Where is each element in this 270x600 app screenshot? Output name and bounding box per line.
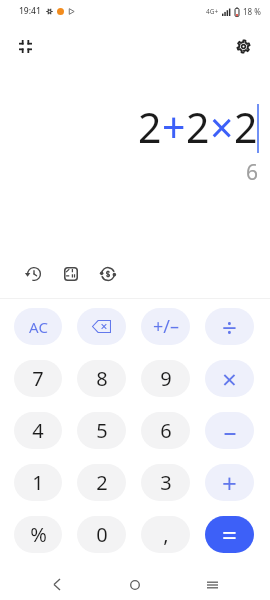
staticText: – [223, 413, 237, 448]
staticText: 5 [96, 417, 108, 444]
staticText: 18 % [243, 6, 261, 17]
staticText: × [210, 99, 234, 155]
staticText: 2 [138, 99, 162, 155]
button[interactable]: 1 [14, 464, 62, 501]
staticText: 3 [160, 469, 172, 496]
button[interactable]: +/– [141, 308, 190, 345]
button[interactable]: – [205, 412, 254, 449]
button[interactable]: AC [14, 308, 62, 345]
button[interactable]: × [205, 360, 254, 397]
button[interactable]: 5 [77, 412, 126, 449]
button[interactable]: = [205, 516, 254, 553]
button[interactable]: , [141, 516, 190, 553]
staticText: 8 [96, 365, 108, 392]
button[interactable]: 6 [141, 412, 190, 449]
staticText: × [222, 361, 237, 396]
staticText: + [162, 99, 186, 155]
button[interactable]: Home [117, 569, 153, 600]
button[interactable]: 7 [14, 360, 62, 397]
staticText: 9 [160, 365, 172, 392]
button[interactable]: 9 [141, 360, 190, 397]
staticText: 7 [32, 365, 44, 392]
staticText: 2 [234, 99, 258, 155]
button[interactable]: 3 [141, 464, 190, 501]
button[interactable]: Currency converter [92, 258, 124, 290]
staticText: 2 [96, 469, 108, 496]
staticText: 1 [32, 469, 44, 496]
button[interactable]: History [18, 258, 50, 290]
button[interactable]: Back [39, 569, 75, 600]
staticText: 6 [246, 158, 259, 187]
button[interactable]: 4 [14, 412, 62, 449]
button[interactable]: Recents [194, 569, 230, 600]
staticText: 19:41 [19, 5, 41, 17]
button[interactable]: Unit converter [55, 258, 87, 290]
staticText: ÷ [222, 309, 237, 344]
button[interactable]: Settings [227, 30, 259, 62]
staticText: % [30, 521, 47, 548]
staticText: + [222, 465, 237, 500]
staticText: 4 [32, 417, 44, 444]
staticText: AC [29, 317, 48, 337]
button[interactable]: 2 [77, 464, 126, 501]
button[interactable]: 0 [77, 516, 126, 553]
button[interactable]: + [205, 464, 254, 501]
staticText: +/– [153, 314, 179, 339]
staticText: 4G+ [206, 7, 219, 16]
button[interactable]: % [14, 516, 62, 553]
staticText: , [163, 521, 169, 548]
staticText: = [222, 517, 237, 552]
button[interactable] [77, 308, 126, 345]
button[interactable]: 8 [77, 360, 126, 397]
staticText: 2 [186, 99, 210, 155]
button[interactable]: Collapse [9, 30, 41, 62]
staticText: 6 [160, 417, 172, 444]
button[interactable]: ÷ [205, 308, 254, 345]
staticText: 0 [96, 521, 108, 548]
